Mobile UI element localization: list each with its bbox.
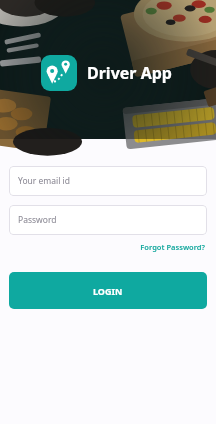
button[interactable]: Password [9,205,207,235]
staticText: Password [18,214,57,226]
button[interactable]: LOGIN [9,272,207,309]
staticText: Driver App [87,62,172,84]
staticText: Your email id [18,175,71,187]
staticText: LOGIN [93,285,123,297]
button[interactable]: Forgot Password? [138,241,207,253]
staticText: Forgot Password? [140,242,205,252]
button[interactable]: Your email id [9,166,207,196]
